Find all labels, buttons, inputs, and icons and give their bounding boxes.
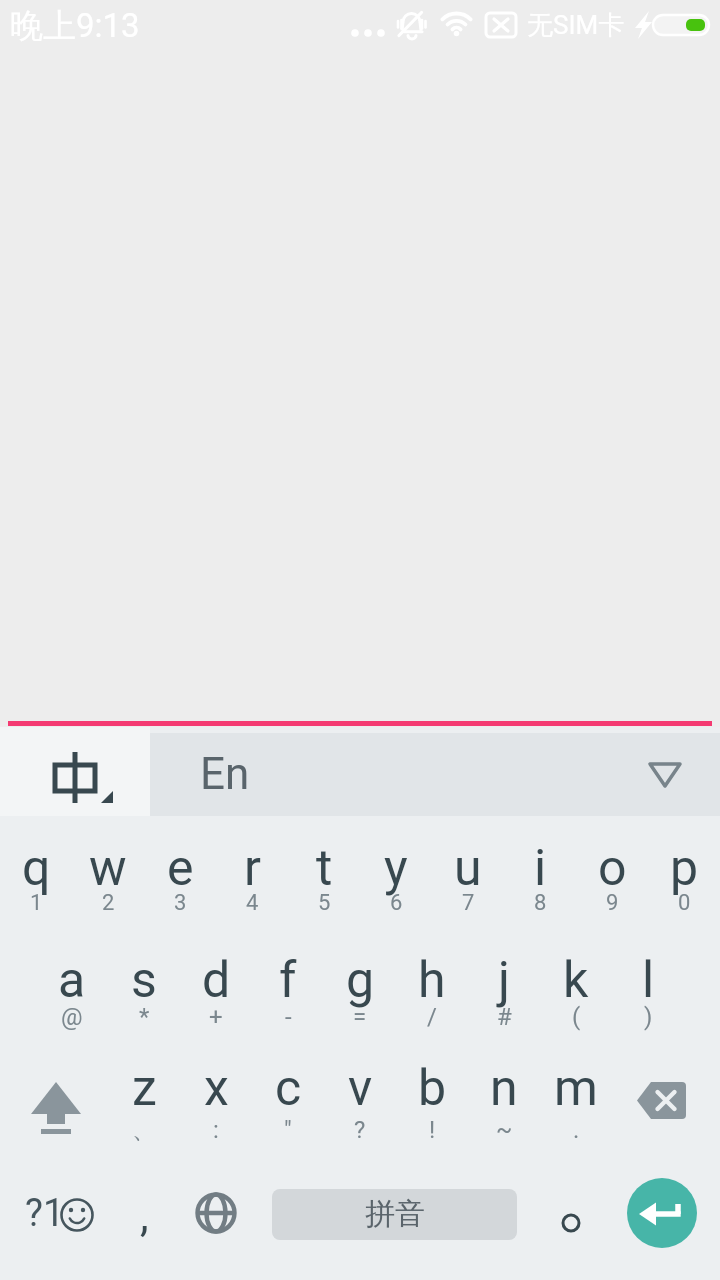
staticText: #: [497, 1003, 512, 1031]
staticText: ,: [140, 1190, 149, 1242]
staticText: b: [418, 1059, 447, 1118]
staticText: ): [644, 1003, 653, 1031]
staticText: t: [316, 839, 333, 898]
staticText: v: [348, 1059, 373, 1118]
button[interactable]: [36, 932, 108, 1048]
button[interactable]: [324, 932, 396, 1048]
staticText: u: [454, 839, 482, 898]
staticText: 0: [678, 890, 691, 916]
button[interactable]: [180, 1048, 252, 1164]
staticText: d: [202, 951, 231, 1010]
button[interactable]: [150, 733, 720, 816]
staticText: ?1: [25, 1191, 65, 1236]
button[interactable]: [0, 1164, 108, 1280]
button[interactable]: [540, 1048, 612, 1164]
staticText: q: [22, 839, 51, 898]
button[interactable]: [0, 816, 72, 932]
button[interactable]: [540, 1164, 612, 1280]
button[interactable]: [108, 1048, 180, 1164]
staticText: ?: [354, 1116, 366, 1144]
button[interactable]: [468, 932, 540, 1048]
staticText: (: [572, 1003, 581, 1031]
staticText: /: [427, 1003, 437, 1031]
staticText: s: [131, 951, 157, 1010]
staticText: 无SIM卡: [527, 9, 625, 42]
button[interactable]: [612, 1048, 720, 1164]
button[interactable]: [180, 932, 252, 1048]
button[interactable]: [576, 816, 648, 932]
button[interactable]: [180, 1164, 252, 1280]
button[interactable]: [72, 816, 144, 932]
staticText: =: [353, 1003, 367, 1031]
staticText: 4: [246, 890, 259, 916]
staticText: e: [167, 839, 194, 898]
staticText: k: [563, 951, 589, 1010]
button[interactable]: [612, 932, 684, 1048]
button[interactable]: [216, 816, 288, 932]
staticText: ~: [496, 1116, 513, 1144]
button[interactable]: [288, 816, 360, 932]
staticText: .: [573, 1116, 580, 1144]
staticText: :: [213, 1116, 219, 1144]
button[interactable]: [108, 1164, 180, 1280]
staticText: i: [534, 839, 547, 898]
button[interactable]: [272, 1189, 517, 1240]
staticText: h: [418, 951, 446, 1010]
staticText: 2: [102, 890, 115, 916]
button[interactable]: [360, 816, 432, 932]
staticText: 拼音: [365, 1195, 425, 1233]
button[interactable]: [252, 932, 324, 1048]
staticText: p: [670, 839, 699, 898]
staticText: y: [384, 839, 408, 898]
staticText: -: [285, 1003, 292, 1031]
button[interactable]: [504, 816, 576, 932]
staticText: o: [598, 839, 627, 898]
staticText: 9: [606, 890, 619, 916]
staticText: j: [498, 951, 510, 1010]
staticText: g: [346, 951, 375, 1010]
staticText: 6: [390, 890, 403, 916]
staticText: +: [209, 1003, 223, 1031]
button[interactable]: [432, 816, 504, 932]
staticText: 7: [462, 890, 475, 916]
staticText: ": [284, 1116, 292, 1144]
staticText: w: [89, 839, 127, 898]
staticText: c: [275, 1059, 302, 1118]
button[interactable]: [0, 1048, 108, 1164]
staticText: r: [244, 839, 261, 898]
staticText: 晚上9:13: [10, 5, 140, 47]
button[interactable]: [468, 1048, 540, 1164]
staticText: En: [200, 748, 250, 800]
staticText: l: [642, 951, 655, 1010]
staticText: 8: [534, 890, 547, 916]
button[interactable]: [252, 1048, 324, 1164]
staticText: @: [61, 1003, 83, 1031]
button[interactable]: [144, 816, 216, 932]
staticText: *: [139, 1003, 150, 1031]
button[interactable]: [396, 932, 468, 1048]
staticText: n: [490, 1059, 518, 1118]
staticText: 5: [318, 890, 331, 916]
button[interactable]: [108, 932, 180, 1048]
staticText: 1: [30, 890, 43, 916]
button[interactable]: [0, 727, 150, 816]
staticText: m: [554, 1059, 598, 1118]
staticText: a: [58, 951, 86, 1010]
staticText: 、: [132, 1115, 156, 1145]
button[interactable]: [627, 1178, 697, 1248]
staticText: f: [279, 951, 297, 1010]
button[interactable]: [324, 1048, 396, 1164]
button[interactable]: [540, 932, 612, 1048]
staticText: !: [429, 1116, 436, 1144]
button[interactable]: [396, 1048, 468, 1164]
staticText: 3: [174, 890, 187, 916]
button[interactable]: [648, 816, 720, 932]
staticText: z: [132, 1059, 157, 1118]
staticText: x: [204, 1059, 229, 1118]
